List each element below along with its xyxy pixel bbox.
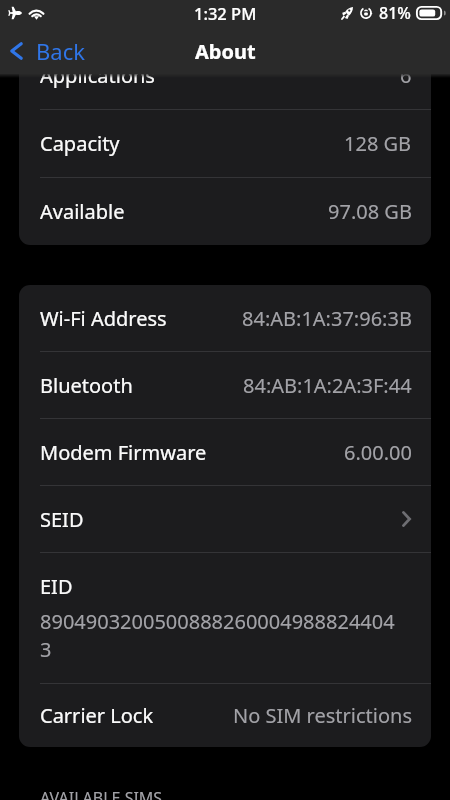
staticText: 1:32 PM	[194, 2, 257, 24]
other: Back	[10, 42, 23, 60]
staticText: 97.08 GB	[328, 198, 412, 225]
button[interactable]: Capacity	[19, 110, 431, 177]
button[interactable]: SEID	[19, 486, 431, 552]
staticText: Wi-Fi Address	[40, 305, 167, 332]
button[interactable]: Wi-Fi Address	[19, 285, 431, 351]
staticText: Bluetooth	[40, 372, 133, 399]
staticText: 6	[400, 62, 412, 89]
staticText: About	[195, 38, 256, 65]
staticText: 84:AB:1A:37:96:3B	[242, 305, 412, 332]
staticText: 6.00.00	[344, 439, 412, 466]
staticText: EID	[40, 573, 73, 600]
staticText: Available	[40, 198, 125, 225]
staticText: Applications	[40, 62, 155, 89]
button[interactable]: Bluetooth	[19, 352, 431, 418]
staticText: Back	[36, 36, 85, 66]
staticText: 84:AB:1A:2A:3F:44	[243, 372, 412, 399]
staticText: Modem Firmware	[40, 439, 207, 466]
button[interactable]: Carrier Lock	[19, 684, 431, 747]
staticText: 81%	[379, 2, 411, 24]
button[interactable]: Available	[19, 178, 431, 245]
staticText: SEID	[40, 506, 84, 533]
staticText: Capacity	[40, 130, 120, 157]
button[interactable]: Applications	[19, 42, 431, 109]
staticText: No SIM restrictions	[233, 702, 412, 729]
staticText: Carrier Lock	[40, 702, 154, 729]
staticText: 89049032005008882600049888244043	[40, 608, 398, 662]
button[interactable]: Modem Firmware	[19, 419, 431, 485]
staticText: 128 GB	[344, 130, 412, 157]
button[interactable]: EID	[19, 553, 431, 683]
staticText: AVAILABLE SIMS	[40, 787, 163, 800]
button[interactable]: Back	[0, 30, 93, 74]
